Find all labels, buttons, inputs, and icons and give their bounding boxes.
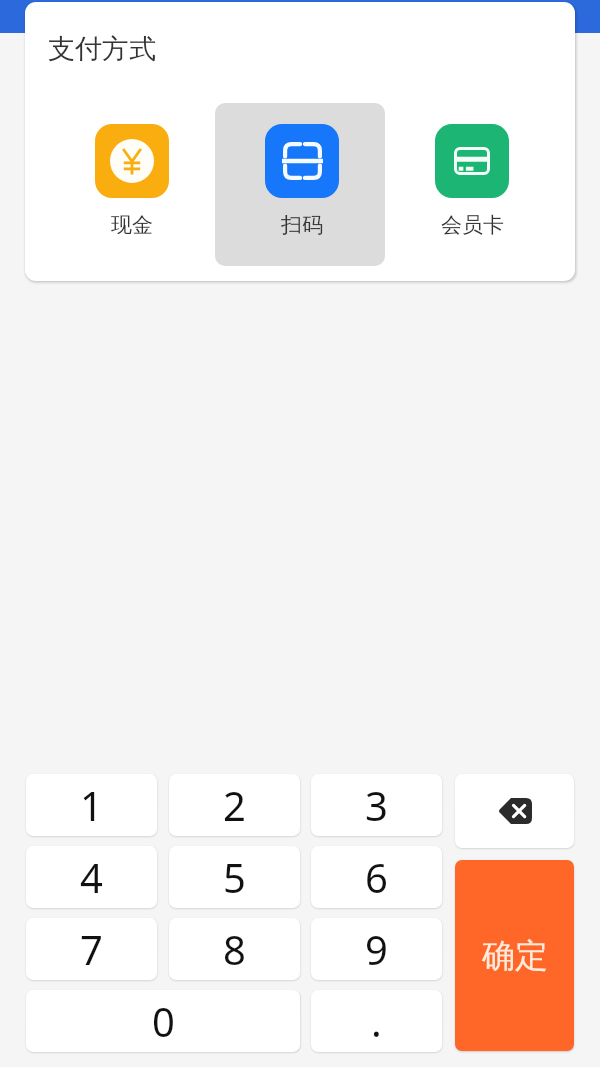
button[interactable]: 6 bbox=[311, 846, 442, 908]
staticText: 5 bbox=[223, 850, 246, 904]
button[interactable]: 7 bbox=[26, 918, 157, 980]
staticText: 0 bbox=[152, 994, 175, 1048]
staticText: 1 bbox=[80, 778, 103, 832]
button[interactable]: 3 bbox=[311, 774, 442, 836]
staticText: 2 bbox=[223, 778, 246, 832]
staticText: 8 bbox=[223, 922, 246, 976]
button[interactable]: 现金 bbox=[45, 103, 215, 266]
button[interactable]: 确定 bbox=[455, 860, 574, 1051]
button[interactable]: 1 bbox=[26, 774, 157, 836]
button[interactable]: 8 bbox=[169, 918, 300, 980]
staticText: 确定 bbox=[482, 935, 548, 977]
button[interactable]: 4 bbox=[26, 846, 157, 908]
button[interactable]: 5 bbox=[169, 846, 300, 908]
button[interactable]: 9 bbox=[311, 918, 442, 980]
button[interactable]: 2 bbox=[169, 774, 300, 836]
staticText: 3 bbox=[365, 778, 388, 832]
staticText: . bbox=[371, 994, 382, 1048]
staticText: 6 bbox=[365, 850, 388, 904]
staticText: 现金 bbox=[111, 212, 153, 238]
staticText: 4 bbox=[80, 850, 103, 904]
button[interactable]: . bbox=[311, 990, 442, 1052]
staticText: 7 bbox=[80, 922, 103, 976]
button[interactable]: Backspace bbox=[455, 774, 574, 848]
button[interactable]: 扫码 bbox=[215, 103, 385, 266]
button[interactable]: 会员卡 bbox=[385, 103, 555, 266]
staticText: 会员卡 bbox=[441, 212, 504, 238]
staticText: 支付方式 bbox=[48, 32, 156, 66]
staticText: 9 bbox=[365, 922, 388, 976]
staticText: 扫码 bbox=[281, 212, 323, 238]
button[interactable]: 0 bbox=[26, 990, 300, 1052]
